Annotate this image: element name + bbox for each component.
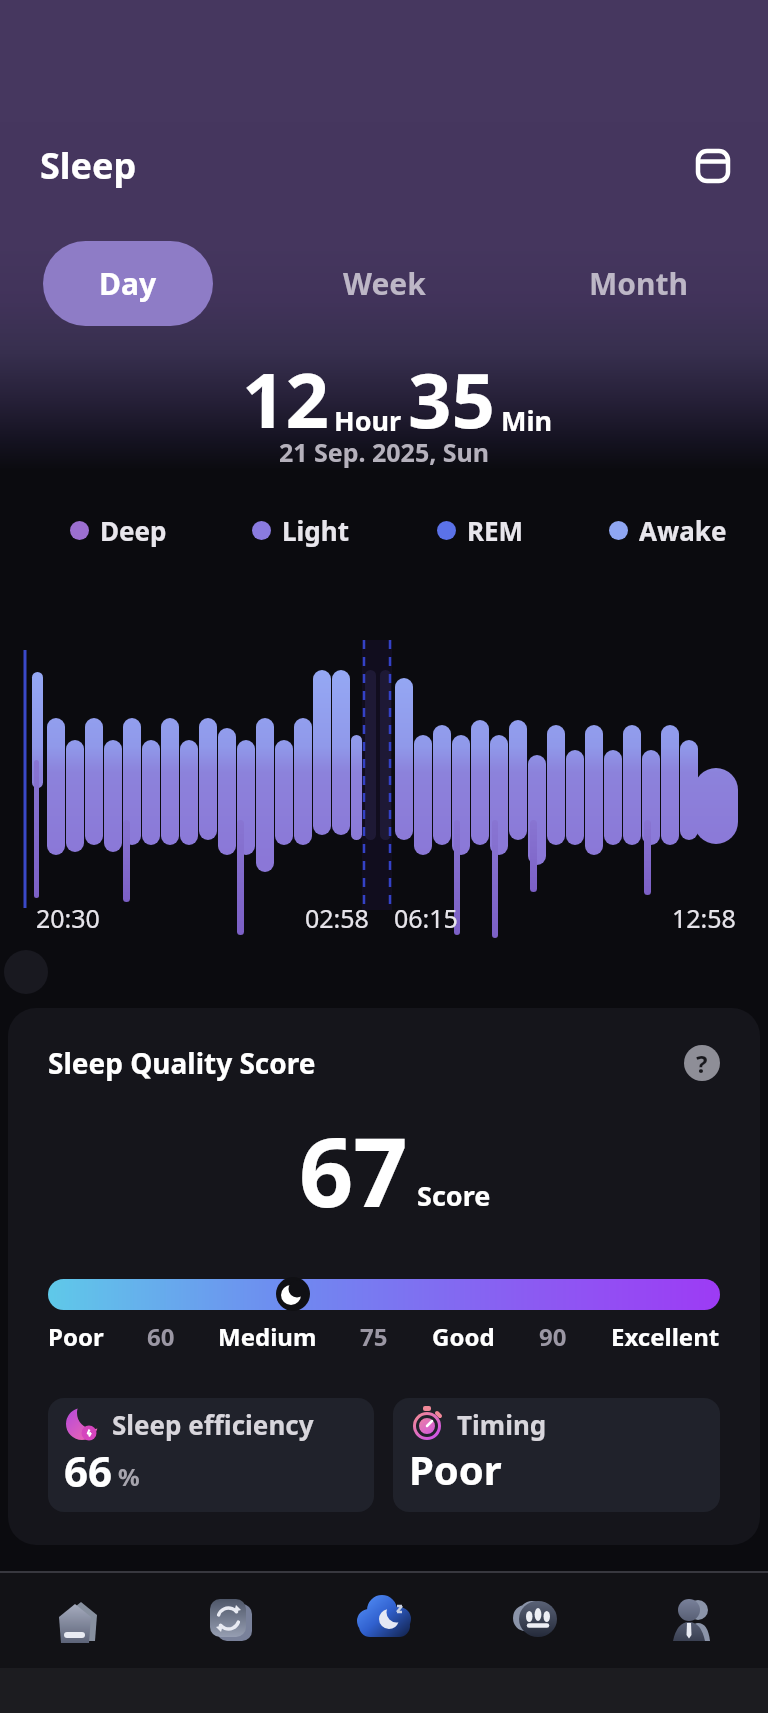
staticText: 12 [242, 347, 329, 451]
staticText: 90 [539, 1320, 567, 1353]
staticText: Light [282, 513, 349, 548]
staticText: Week [343, 263, 426, 304]
button[interactable] [153, 1573, 306, 1668]
button[interactable] [306, 1573, 460, 1668]
staticText: 60 [147, 1320, 175, 1353]
staticText: 21 Sep. 2025, Sun [0, 435, 768, 469]
staticText: Sleep Quality Score [48, 1044, 316, 1082]
staticText: 06:15 [394, 901, 458, 935]
staticText: 66 [64, 1442, 113, 1499]
staticText: Timing [457, 1407, 547, 1442]
button[interactable] [614, 1573, 768, 1668]
staticText: Score [417, 1177, 491, 1214]
staticText: Poor [409, 1442, 502, 1496]
staticText: Day [99, 263, 157, 304]
staticText: Sleep [40, 141, 137, 190]
staticText: Poor [48, 1320, 104, 1353]
button[interactable] [0, 1573, 153, 1668]
staticText: 35 [408, 347, 495, 451]
staticText: 75 [360, 1320, 388, 1353]
staticText: Deep [100, 513, 167, 548]
staticText: ? [696, 1047, 708, 1080]
staticText: Hour [334, 402, 402, 439]
button[interactable] [696, 149, 730, 183]
button[interactable]: Month [559, 241, 719, 326]
staticText: % [118, 1460, 140, 1493]
staticText: Medium [218, 1320, 317, 1353]
staticText: Awake [639, 513, 727, 548]
button[interactable] [460, 1573, 614, 1668]
staticText: 02:58 [305, 901, 369, 935]
button[interactable]: ? [684, 1045, 720, 1081]
button[interactable]: Week [304, 241, 464, 326]
staticText: Good [432, 1320, 495, 1353]
staticText: Excellent [611, 1320, 720, 1353]
button[interactable]: Day [43, 241, 213, 326]
staticText: 67 [299, 1105, 408, 1234]
button[interactable]: Sleep efficiency [48, 1398, 374, 1512]
staticText: 12:58 [672, 901, 736, 935]
staticText: Sleep efficiency [112, 1407, 314, 1442]
staticText: Month [589, 263, 689, 304]
staticText: REM [467, 513, 524, 548]
button[interactable]: Timing [393, 1398, 720, 1512]
staticText: Min [501, 402, 553, 439]
staticText: 20:30 [36, 901, 100, 935]
